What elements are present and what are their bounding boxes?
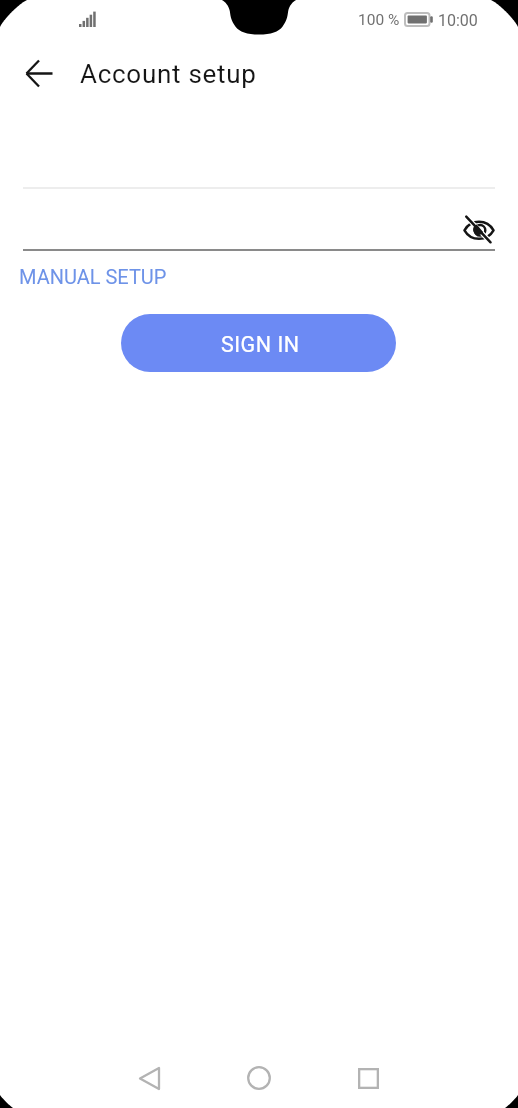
button[interactable]: Back <box>15 49 63 97</box>
staticText: SIGN IN <box>221 332 300 357</box>
staticText: 10:00 <box>438 11 478 30</box>
button[interactable]: Home <box>231 1050 287 1106</box>
button[interactable]: Back <box>121 1050 177 1106</box>
staticText: 100 % <box>358 11 400 29</box>
button[interactable]: Show password <box>458 209 499 250</box>
button[interactable]: Recent apps <box>340 1050 396 1106</box>
staticText: Account setup <box>80 59 257 89</box>
button[interactable]: SIGN IN <box>121 314 396 372</box>
staticText: MANUAL SETUP <box>19 265 167 288</box>
button[interactable]: MANUAL SETUP <box>19 265 167 288</box>
